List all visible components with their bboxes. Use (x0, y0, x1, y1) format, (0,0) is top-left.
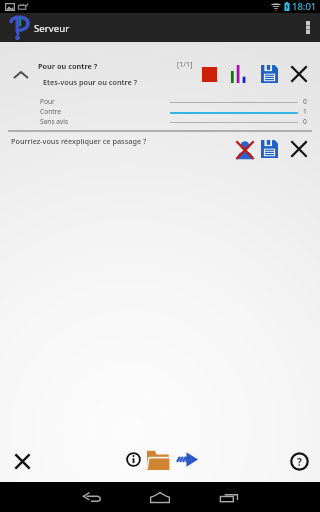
staticText: Serveur (34, 22, 70, 35)
staticText: [1/1] (177, 60, 193, 70)
staticText: Pour (40, 97, 55, 106)
staticText: Pour ou contre ? (38, 61, 98, 71)
staticText: 0 (303, 117, 307, 126)
button[interactable]: Stop (198, 62, 221, 86)
button[interactable]: Next (176, 450, 198, 468)
button[interactable]: Collapse (9, 64, 33, 86)
staticText: ? (297, 455, 302, 469)
button[interactable]: Save (258, 62, 280, 86)
button[interactable]: Recents (209, 485, 249, 509)
staticText: Contre (40, 107, 61, 116)
staticText: Pourriez-vous réexpliquer ce passage ? (11, 136, 147, 146)
staticText: 1 (303, 107, 307, 116)
button[interactable]: Close (11, 450, 33, 472)
button[interactable]: Results (227, 62, 249, 86)
button[interactable]: Close (288, 62, 310, 86)
button[interactable]: Save (258, 137, 280, 161)
button[interactable]: Cancel timer (233, 137, 256, 161)
button[interactable]: Help (288, 450, 310, 472)
button[interactable]: Open folder (145, 449, 170, 471)
staticText: Etes-vous pour ou contre ? (43, 77, 138, 87)
button[interactable]: More options (296, 13, 320, 42)
staticText: 18:01 (292, 0, 317, 13)
button[interactable]: Info (124, 450, 142, 468)
button[interactable]: Home (140, 485, 180, 509)
staticText: 0 (303, 97, 307, 106)
button[interactable]: Close (288, 137, 310, 161)
staticText: Sans avis (40, 117, 69, 126)
button[interactable]: Back (72, 485, 112, 509)
